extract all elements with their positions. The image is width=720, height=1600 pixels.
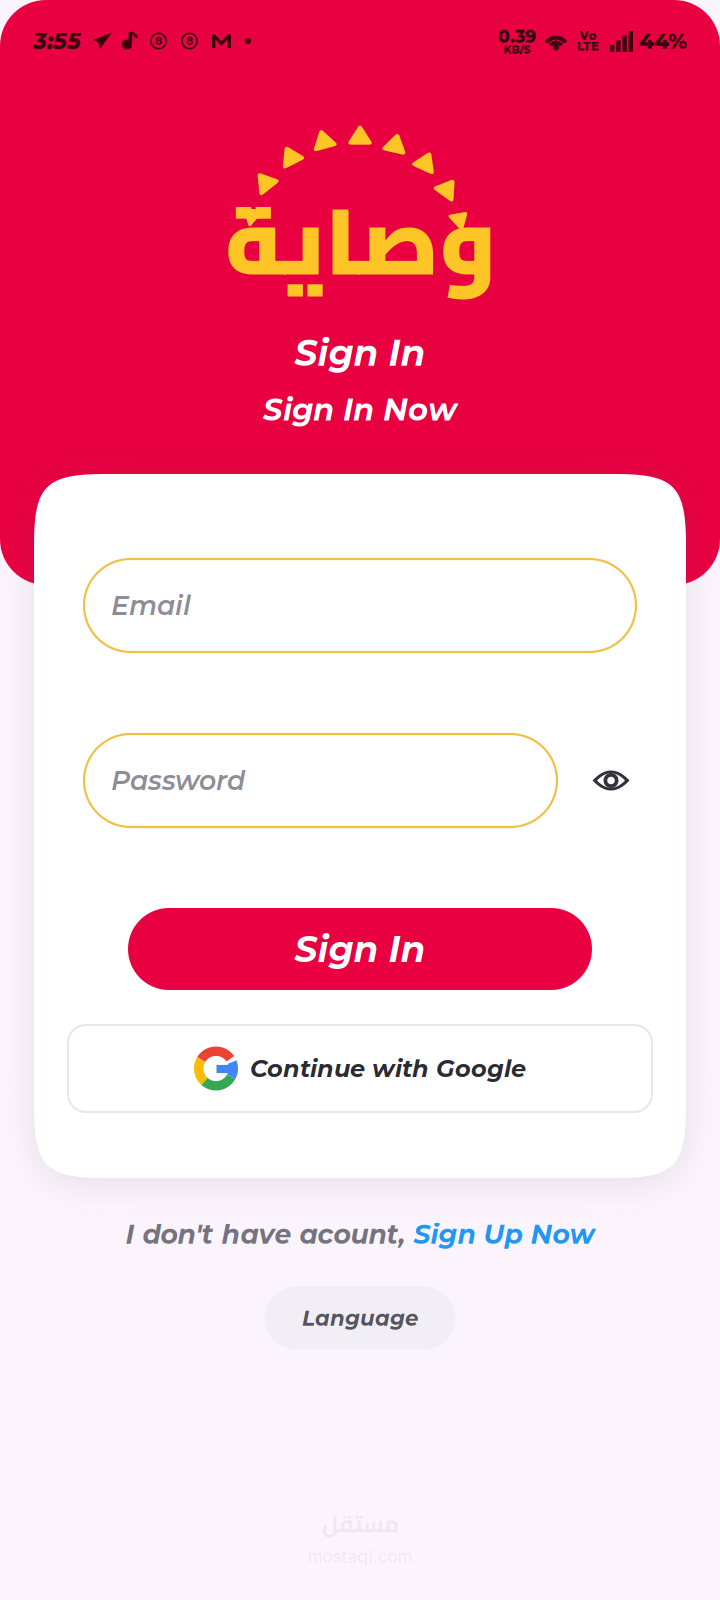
staticText: Sign In Now [263, 391, 457, 428]
button[interactable]: Language [264, 1286, 455, 1349]
button[interactable]: Show password [591, 766, 631, 794]
staticText: 44% [639, 28, 687, 54]
button[interactable]: Continue with Google [68, 1025, 652, 1112]
staticText: I don't have acount, [125, 1218, 413, 1250]
staticText: Sign In [294, 331, 425, 375]
staticText: LTE [577, 39, 599, 54]
button[interactable]: Password [84, 734, 557, 827]
staticText: 0.39 [498, 26, 536, 47]
staticText: مستقل [321, 1503, 398, 1545]
staticText: 8 [155, 34, 162, 47]
staticText: mostaql.com [307, 1546, 412, 1567]
staticText: وصاية [224, 153, 496, 328]
staticText: KB/S [503, 43, 530, 56]
staticText: 3:55 [33, 27, 81, 55]
staticText: Sign In [294, 927, 425, 971]
staticText: Language [302, 1305, 418, 1331]
staticText: Email [111, 589, 191, 622]
button[interactable]: Sign Up Now [413, 1218, 594, 1250]
staticText: Sign Up Now [413, 1218, 594, 1250]
button[interactable]: Email [84, 559, 636, 652]
staticText: Continue with Google [250, 1054, 526, 1083]
button[interactable]: Sign In [128, 908, 592, 990]
staticText: Vo [579, 28, 596, 43]
staticText: 8 [186, 34, 193, 47]
staticText: Password [111, 764, 245, 797]
